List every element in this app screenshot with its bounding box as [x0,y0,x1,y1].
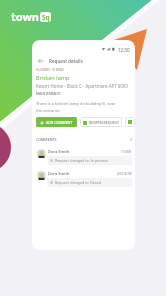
staticText: Request changed to: In process [55,158,108,163]
staticText: REOPEN REQUEST [89,120,119,125]
staticText: 10 MIN [121,150,132,154]
button[interactable]: ADD COMMENT [36,117,77,127]
button[interactable]: Back [37,57,45,65]
staticText: Resort Home - Block C - Apartment APT 00… [36,83,128,89]
staticText: Request changed to Closed [55,180,101,185]
staticText: town [11,9,39,24]
staticText: MAINTENANCE [36,91,61,96]
button[interactable]: REOPEN REQUEST [80,117,122,127]
staticText: Broken lamp [36,74,70,82]
staticText: 12:30 [118,47,130,53]
staticText: Dora Smith [48,171,70,176]
staticText: JUST NOW [117,172,132,176]
staticText: CLOSED · 5 Y000 [36,67,64,72]
button[interactable]: More [125,117,135,127]
staticText: COMMENTS [36,137,57,142]
staticText: There is a broken lamp on building B, ne… [36,101,120,113]
staticText: ADD COMMENT [46,120,73,125]
staticText: Sq [42,13,50,22]
staticText: Dora Smith [48,149,70,154]
staticText: Request details [49,58,83,64]
staticText: 2 [130,137,132,142]
